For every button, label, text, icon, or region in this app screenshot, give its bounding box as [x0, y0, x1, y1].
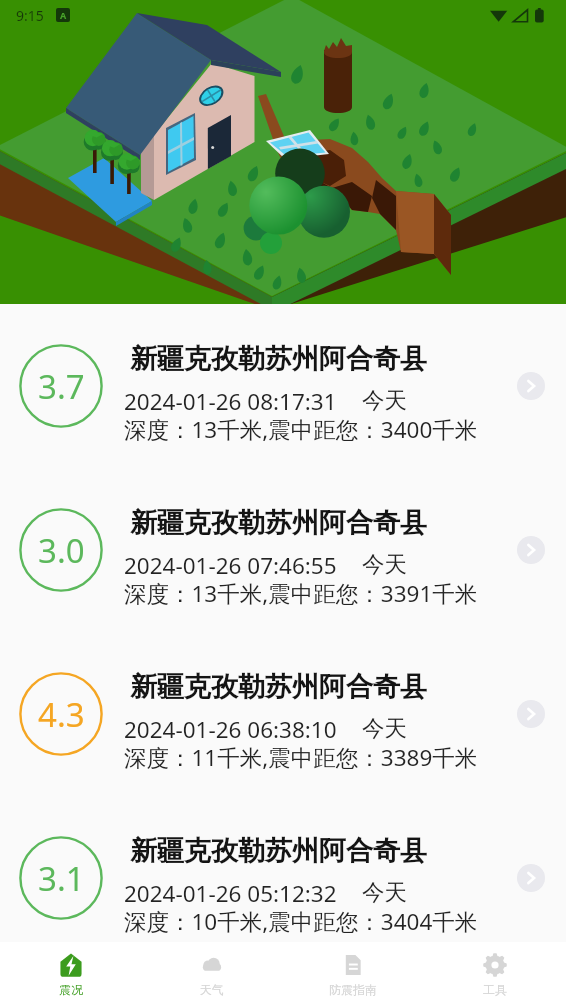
staticText: 今天 [362, 878, 407, 906]
button[interactable]: Details [517, 372, 545, 400]
staticText: 今天 [362, 550, 407, 578]
staticText: 深度：13千米,震中距您：3391千米 [124, 578, 478, 609]
staticText: 深度：10千米,震中距您：3404千米 [124, 906, 478, 937]
button[interactable]: Details [517, 536, 545, 564]
staticText: 深度：13千米,震中距您：3400千米 [124, 414, 478, 445]
staticText: 2024-01-26 07:46:55 [124, 550, 337, 581]
staticText: 工具 [483, 982, 507, 997]
staticText: 3.0 [38, 528, 85, 573]
staticText: 震况 [59, 982, 83, 997]
button[interactable]: 震况 [0, 942, 141, 1008]
button[interactable]: 3.0 [0, 468, 566, 632]
staticText: 2024-01-26 06:38:10 [124, 714, 337, 745]
staticText: 防震指南 [329, 982, 377, 997]
staticText: 新疆克孜勒苏州阿合奇县 [130, 342, 427, 376]
button[interactable]: 天气 [141, 942, 282, 1008]
button[interactable]: Details [517, 700, 545, 728]
button[interactable]: Details [517, 864, 545, 892]
staticText: 今天 [362, 714, 407, 742]
staticText: 2024-01-26 05:12:32 [124, 878, 337, 909]
staticText: 2024-01-26 08:17:31 [124, 386, 337, 417]
staticText: 3.1 [38, 856, 85, 901]
button[interactable]: 防震指南 [282, 942, 424, 1008]
button[interactable]: 工具 [424, 942, 566, 1008]
staticText: 深度：11千米,震中距您：3389千米 [124, 742, 478, 773]
staticText: 新疆克孜勒苏州阿合奇县 [130, 670, 427, 704]
staticText: 天气 [200, 982, 224, 997]
button[interactable]: 3.7 [0, 304, 566, 468]
staticText: 新疆克孜勒苏州阿合奇县 [130, 506, 427, 540]
button[interactable]: 3.1 [0, 796, 566, 942]
staticText: 9:15 [16, 6, 44, 25]
button[interactable]: 4.3 [0, 632, 566, 796]
staticText: 4.3 [38, 692, 85, 737]
staticText: 新疆克孜勒苏州阿合奇县 [130, 834, 427, 868]
staticText: A [60, 9, 67, 21]
staticText: 今天 [362, 386, 407, 414]
staticText: 3.7 [38, 364, 85, 409]
